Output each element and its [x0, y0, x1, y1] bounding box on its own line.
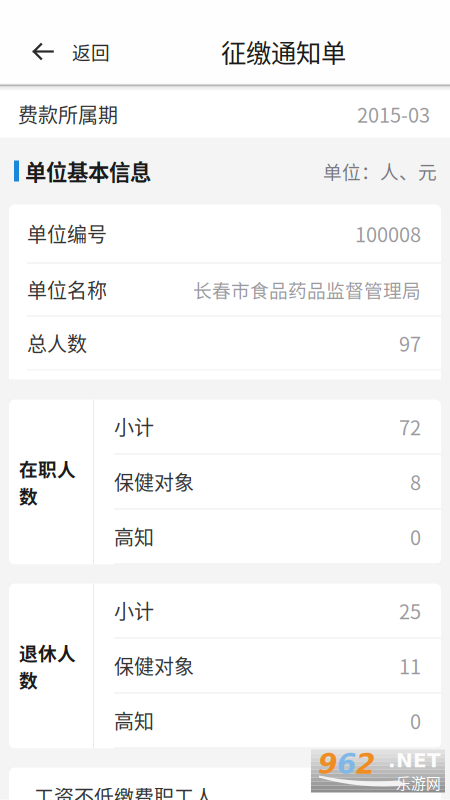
staticText: 100008 [355, 219, 421, 248]
staticText: 25 [399, 596, 421, 625]
staticText: 返回 [72, 38, 110, 65]
staticText: 保健对象 [114, 651, 194, 680]
staticText: 高知 [114, 706, 154, 735]
staticText: 小计 [114, 596, 154, 625]
staticText: 单位：人、元 [323, 157, 437, 184]
staticText: 费款所属期 [18, 99, 118, 128]
staticText: 6 [337, 748, 356, 780]
staticText: 工资不低缴费职工人 [34, 781, 214, 800]
staticText: 72 [399, 412, 421, 441]
staticText: 97 [399, 328, 421, 357]
staticText: 退休人数 [19, 639, 76, 693]
staticText: 单位基本信息 [25, 156, 151, 186]
staticText: .NET [388, 749, 441, 772]
staticText: 在职人数 [19, 455, 76, 509]
staticText: 长春市食品药品监督管理局 [193, 276, 421, 303]
staticText: 保健对象 [114, 467, 194, 496]
staticText: 2015-03 [357, 99, 430, 128]
staticText: 8 [410, 467, 421, 496]
staticText: 9 [318, 748, 337, 780]
staticText: 高知 [114, 522, 154, 551]
staticText: 0 [410, 706, 421, 735]
staticText: 征缴通知单 [221, 33, 346, 70]
staticText: 0 [410, 522, 421, 551]
staticText: 2 [356, 748, 375, 780]
button[interactable]: 返回 [0, 19, 117, 83]
staticText: 乐游网 [396, 772, 441, 793]
staticText: 小计 [114, 412, 154, 441]
staticText: 单位名称 [27, 275, 107, 304]
staticText: 单位编号 [27, 219, 107, 248]
staticText: 11 [399, 651, 421, 680]
staticText: 总人数 [27, 328, 87, 357]
